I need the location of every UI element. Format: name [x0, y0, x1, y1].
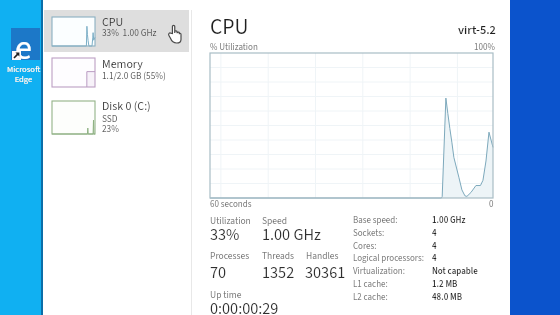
button[interactable]: [44, 98, 189, 142]
staticText: Not capable: [432, 265, 478, 278]
staticText: 1.1/2.0 GB (55%): [102, 69, 166, 82]
staticText: Utilization: [210, 214, 251, 228]
staticText: Microsoft: [2, 63, 45, 75]
staticText: Processes: [210, 249, 250, 263]
staticText: Logical processors:: [353, 252, 424, 265]
staticText: Handles: [306, 249, 339, 263]
staticText: SSD: [102, 112, 118, 125]
staticText: Disk 0 (C:): [102, 98, 151, 115]
staticText: 33%: [210, 223, 240, 246]
staticText: 48.0 MB: [432, 291, 462, 304]
staticText: 0: [489, 198, 494, 211]
staticText: Virtualization:: [353, 265, 405, 278]
button[interactable]: [44, 10, 189, 52]
staticText: 100%: [474, 41, 495, 54]
staticText: 1.00 GHz: [262, 223, 321, 246]
staticText: 23%: [102, 122, 119, 135]
staticText: Edge: [2, 73, 45, 85]
other: Pointer: [168, 25, 181, 43]
staticText: CPU: [210, 12, 249, 43]
staticText: L2 cache:: [353, 291, 388, 304]
button[interactable]: Microsoft Edge: [0, 24, 43, 86]
staticText: 4: [432, 240, 437, 253]
button[interactable]: [44, 53, 189, 97]
staticText: 70: [210, 261, 227, 284]
staticText: Edge: [2, 73, 45, 85]
staticText: Cores:: [353, 240, 377, 253]
staticText: e: [15, 24, 32, 72]
staticText: 1.2 MB: [432, 278, 458, 291]
staticText: Up time: [210, 288, 242, 302]
staticText: virt-5.2: [458, 21, 496, 39]
staticText: 4: [432, 252, 437, 265]
staticText: CPU: [102, 14, 124, 31]
staticText: Sockets:: [353, 227, 385, 240]
staticText: 4: [432, 227, 437, 240]
staticText: Threads: [262, 249, 295, 263]
staticText: % Utilization: [210, 41, 258, 54]
staticText: L1 cache:: [353, 278, 388, 291]
staticText: 60 seconds: [210, 198, 252, 211]
staticText: Base speed:: [353, 214, 398, 227]
staticText: 0:00:00:29: [210, 297, 279, 315]
staticText: Speed: [262, 214, 288, 228]
staticText: 1.00 GHz: [432, 214, 466, 227]
staticText: Microsoft: [2, 63, 45, 75]
staticText: 30361: [305, 261, 346, 284]
staticText: Memory: [102, 56, 143, 73]
staticText: 1352: [262, 261, 295, 284]
staticText: 33% 1.00 GHz: [102, 26, 157, 39]
